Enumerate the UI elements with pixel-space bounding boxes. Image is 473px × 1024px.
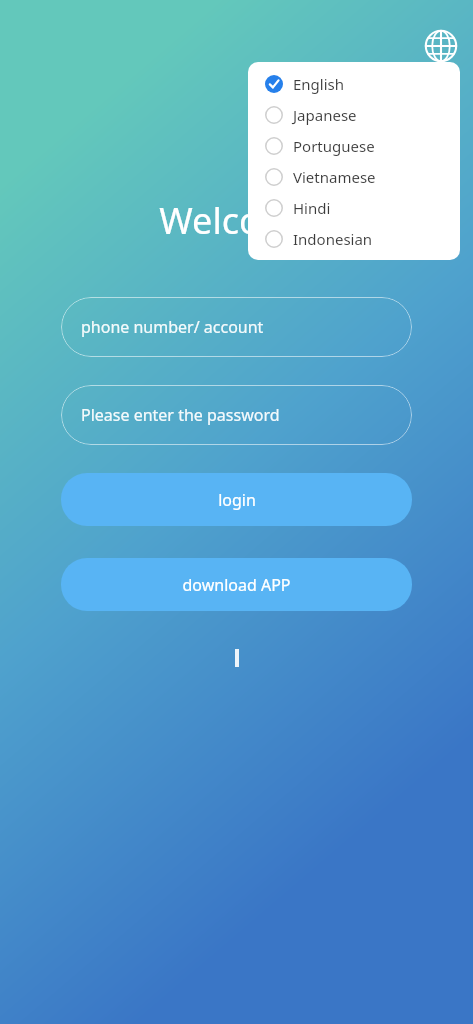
button[interactable]: Hindi xyxy=(248,192,460,223)
button[interactable]: English xyxy=(248,68,460,99)
staticText: Vietnamese xyxy=(293,167,376,187)
staticText: Indonesian xyxy=(293,229,373,249)
button[interactable]: Japanese xyxy=(248,99,460,130)
staticText: Please enter the password xyxy=(81,404,280,426)
staticText: Japanese xyxy=(293,105,357,125)
button[interactable]: Please enter the password xyxy=(61,385,412,445)
button[interactable]: Language xyxy=(421,26,461,66)
button[interactable]: login xyxy=(61,473,412,526)
button[interactable]: phone number/ account xyxy=(61,297,412,357)
staticText: download APP xyxy=(182,574,291,596)
button[interactable]: Vietnamese xyxy=(248,161,460,192)
staticText: login xyxy=(218,489,256,511)
staticText: Welcome xyxy=(159,196,315,245)
button[interactable]: download APP xyxy=(61,558,412,611)
staticText: English xyxy=(293,74,345,94)
staticText: Hindi xyxy=(293,198,331,218)
button[interactable]: Indonesian xyxy=(248,223,460,254)
staticText: phone number/ account xyxy=(81,316,264,338)
button[interactable]: Portuguese xyxy=(248,130,460,161)
staticText: Portuguese xyxy=(293,136,375,156)
